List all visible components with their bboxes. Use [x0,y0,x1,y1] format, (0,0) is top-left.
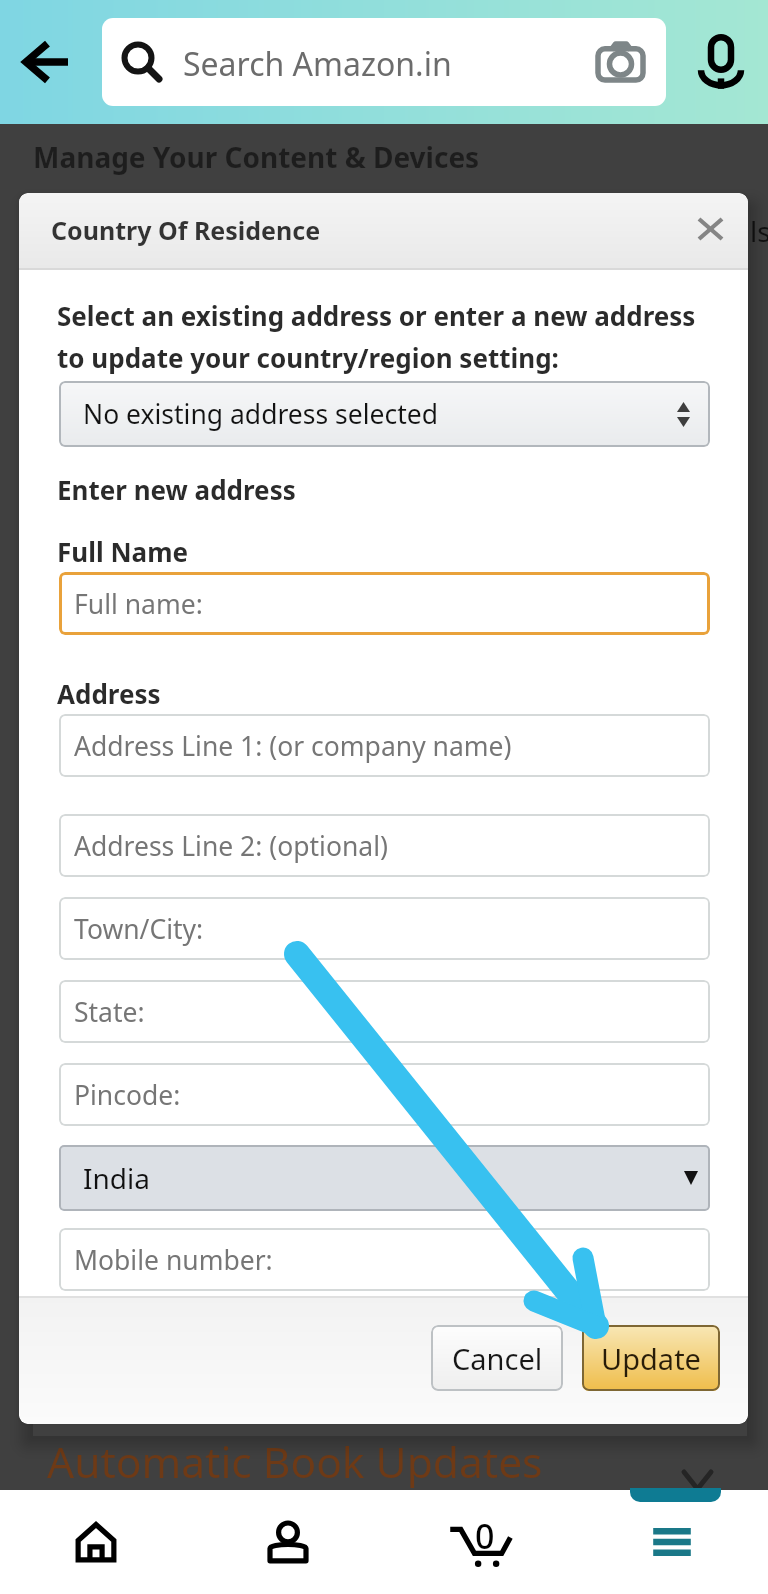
button[interactable]: Cart, 0 items [384,1490,576,1594]
staticText: Update [601,1339,701,1378]
staticText: Manage Your Content & Devices [33,138,480,176]
button[interactable]: Search by camera [596,42,645,82]
staticText: No existing address selected [83,396,439,432]
button[interactable]: Cancel [431,1325,563,1391]
staticText: Pincode: [74,1077,181,1113]
button[interactable]: Update [582,1325,720,1391]
button[interactable]: India [59,1145,710,1211]
staticText: 0 [475,1513,495,1559]
button[interactable]: Home [0,1490,192,1594]
staticText: Country Of Residence [51,213,321,247]
button[interactable]: Pincode: [59,1063,710,1126]
staticText: Select an existing address or enter a ne… [57,298,696,376]
staticText: Address Line 2: (optional) [74,828,388,864]
staticText: Cancel [452,1339,543,1378]
staticText: Mobile number: [74,1242,273,1278]
button[interactable]: Expand section [630,1488,721,1502]
staticText: Address [57,676,161,711]
button[interactable]: Close [683,201,737,257]
button[interactable]: Your account [192,1490,384,1594]
button[interactable]: Back [12,26,80,98]
staticText: Search Amazon.in [183,42,452,86]
staticText: Address Line 1: (or company name) [74,728,512,764]
button[interactable]: Voice search [694,32,748,90]
staticText: ls [750,212,768,250]
staticText: Enter new address [57,472,296,507]
button[interactable]: No existing address selected [59,381,710,447]
staticText: India [83,1159,150,1197]
staticText: Full Name [57,534,189,569]
button[interactable]: Address Line 1: (or company name) [59,714,710,777]
staticText: State: [74,994,145,1030]
staticText: Automatic Book Updates [47,1433,543,1491]
staticText: Full name: [74,586,203,622]
button[interactable]: Search Amazon.in [102,18,666,106]
button[interactable]: Town/City: [59,897,710,960]
button[interactable]: Menu [576,1490,768,1594]
staticText: Town/City: [74,911,204,947]
button[interactable]: State: [59,980,710,1043]
button[interactable]: Mobile number: [59,1228,710,1291]
button[interactable]: Full name: [59,572,710,635]
button[interactable]: Address Line 2: (optional) [59,814,710,877]
